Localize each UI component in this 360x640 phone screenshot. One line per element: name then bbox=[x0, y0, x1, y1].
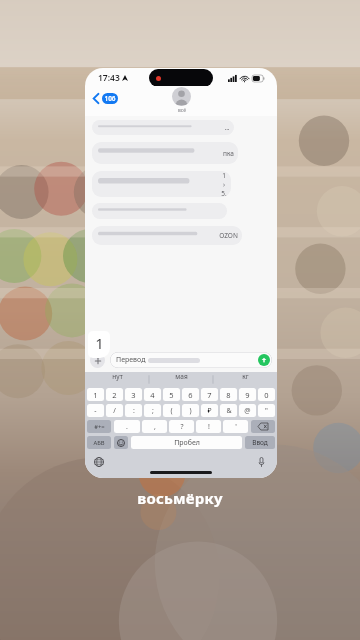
button[interactable]: 7 bbox=[201, 388, 218, 401]
button[interactable]: Пробел bbox=[131, 436, 242, 449]
staticText: ( bbox=[170, 406, 173, 416]
staticText: ; bbox=[152, 406, 154, 416]
staticText: 1 bbox=[93, 390, 98, 400]
button[interactable]: 1 › 5. bbox=[92, 171, 231, 197]
staticText: 3 bbox=[131, 390, 136, 400]
staticText: @ bbox=[244, 406, 251, 416]
staticText: 5 bbox=[169, 390, 174, 400]
staticText: 7 bbox=[207, 390, 212, 400]
button[interactable]: Emoji bbox=[114, 436, 128, 449]
staticText: всё bbox=[178, 107, 186, 114]
staticText: Перевод bbox=[116, 355, 146, 365]
button[interactable]: 8 bbox=[220, 388, 237, 401]
button[interactable]: всё bbox=[168, 87, 195, 114]
staticText: Пробел bbox=[174, 438, 200, 448]
button[interactable]: Перевод bbox=[110, 352, 272, 368]
button[interactable]: 5 bbox=[163, 388, 180, 401]
staticText: : bbox=[133, 406, 135, 416]
button[interactable]: OZON bbox=[92, 226, 242, 245]
staticText: Ввод bbox=[252, 438, 268, 447]
staticText: ) bbox=[189, 406, 192, 416]
button[interactable]: ' bbox=[223, 420, 248, 433]
staticText: 6 bbox=[188, 390, 193, 400]
staticText: #+= bbox=[94, 423, 105, 431]
staticText: пка bbox=[223, 149, 234, 158]
staticText: 4 bbox=[150, 390, 155, 400]
staticText: 2 bbox=[112, 390, 117, 400]
staticText: ? bbox=[180, 422, 184, 432]
staticText: OZON bbox=[219, 231, 238, 240]
button[interactable]: . bbox=[114, 420, 140, 433]
staticText: - bbox=[94, 406, 97, 416]
button[interactable]: @ bbox=[239, 404, 256, 417]
staticText: " bbox=[265, 406, 268, 416]
staticText: мая bbox=[175, 372, 188, 381]
staticText: 8 bbox=[226, 390, 231, 400]
button[interactable]: , bbox=[142, 420, 167, 433]
button[interactable]: ! bbox=[196, 420, 221, 433]
button[interactable]: кг bbox=[213, 372, 277, 381]
staticText: & bbox=[226, 406, 232, 416]
staticText: 1 bbox=[95, 333, 104, 353]
staticText: АБВ bbox=[93, 439, 105, 447]
staticText: 0 bbox=[264, 390, 269, 400]
staticText: ' bbox=[235, 422, 237, 432]
staticText: 17:43 bbox=[98, 72, 120, 84]
staticText: , bbox=[154, 422, 156, 432]
button[interactable]: Attach bbox=[90, 353, 105, 368]
button[interactable]: Send bbox=[258, 354, 270, 366]
button[interactable]: ; bbox=[144, 404, 161, 417]
button[interactable]: ... bbox=[92, 120, 234, 135]
button[interactable]: мая bbox=[149, 372, 213, 381]
staticText: 106 bbox=[104, 94, 116, 103]
button[interactable]: АБВ bbox=[87, 436, 111, 449]
button[interactable]: Change language bbox=[93, 456, 104, 467]
staticText: кг bbox=[242, 372, 249, 381]
button[interactable]: 4 bbox=[144, 388, 161, 401]
button[interactable]: 2 bbox=[106, 388, 123, 401]
button[interactable]: пка bbox=[92, 142, 238, 164]
staticText: ₽ bbox=[207, 406, 212, 416]
staticText: / bbox=[113, 406, 116, 416]
button[interactable]: нут bbox=[85, 372, 149, 381]
staticText: ! bbox=[208, 422, 210, 432]
button[interactable]: 1 bbox=[87, 388, 104, 401]
button[interactable]: / bbox=[106, 404, 123, 417]
button[interactable]: Ввод bbox=[245, 436, 275, 449]
button[interactable]: Backspace bbox=[251, 420, 275, 433]
button[interactable]: 3 bbox=[125, 388, 142, 401]
button[interactable]: Back bbox=[91, 91, 120, 106]
button[interactable]: Dictation bbox=[256, 456, 267, 467]
button[interactable]: #+= bbox=[87, 420, 111, 433]
button[interactable]: ? bbox=[169, 420, 194, 433]
staticText: ... bbox=[224, 123, 230, 132]
button[interactable]: ₽ bbox=[201, 404, 218, 417]
button[interactable]: - bbox=[87, 404, 104, 417]
button[interactable]: & bbox=[220, 404, 237, 417]
button[interactable] bbox=[92, 203, 227, 219]
staticText: нут bbox=[112, 372, 123, 381]
staticText: восьмёрку bbox=[137, 488, 223, 508]
button[interactable]: ) bbox=[182, 404, 199, 417]
button[interactable]: : bbox=[125, 404, 142, 417]
staticText: 9 bbox=[245, 390, 250, 400]
button[interactable]: 6 bbox=[182, 388, 199, 401]
button[interactable]: 9 bbox=[239, 388, 256, 401]
staticText: . bbox=[126, 422, 128, 432]
button[interactable]: " bbox=[258, 404, 275, 417]
button[interactable]: ( bbox=[163, 404, 180, 417]
button[interactable]: 0 bbox=[258, 388, 275, 401]
staticText: 1 › 5. bbox=[221, 171, 227, 197]
